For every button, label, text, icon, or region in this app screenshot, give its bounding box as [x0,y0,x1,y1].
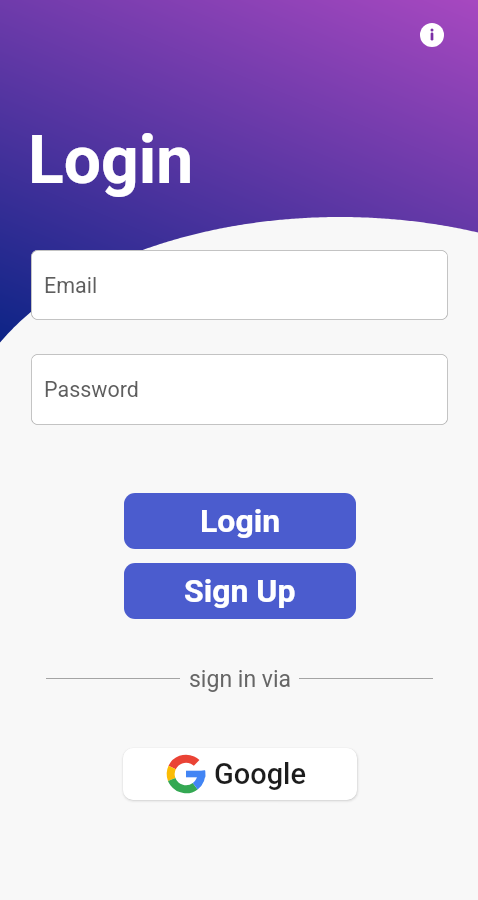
button[interactable]: Google [123,748,357,800]
button[interactable]: Password [31,354,448,425]
staticText: sign in via [189,666,292,693]
button[interactable]: Email [31,250,448,320]
staticText: Email [44,273,98,298]
staticText: Google [214,757,307,791]
button[interactable]: Sign Up [124,563,356,619]
button[interactable]: Info [419,22,445,48]
staticText: Password [44,377,139,402]
button[interactable]: Login [124,493,356,549]
staticText: Login [28,122,194,199]
staticText: Sign Up [184,572,296,610]
staticText: Login [200,502,281,540]
